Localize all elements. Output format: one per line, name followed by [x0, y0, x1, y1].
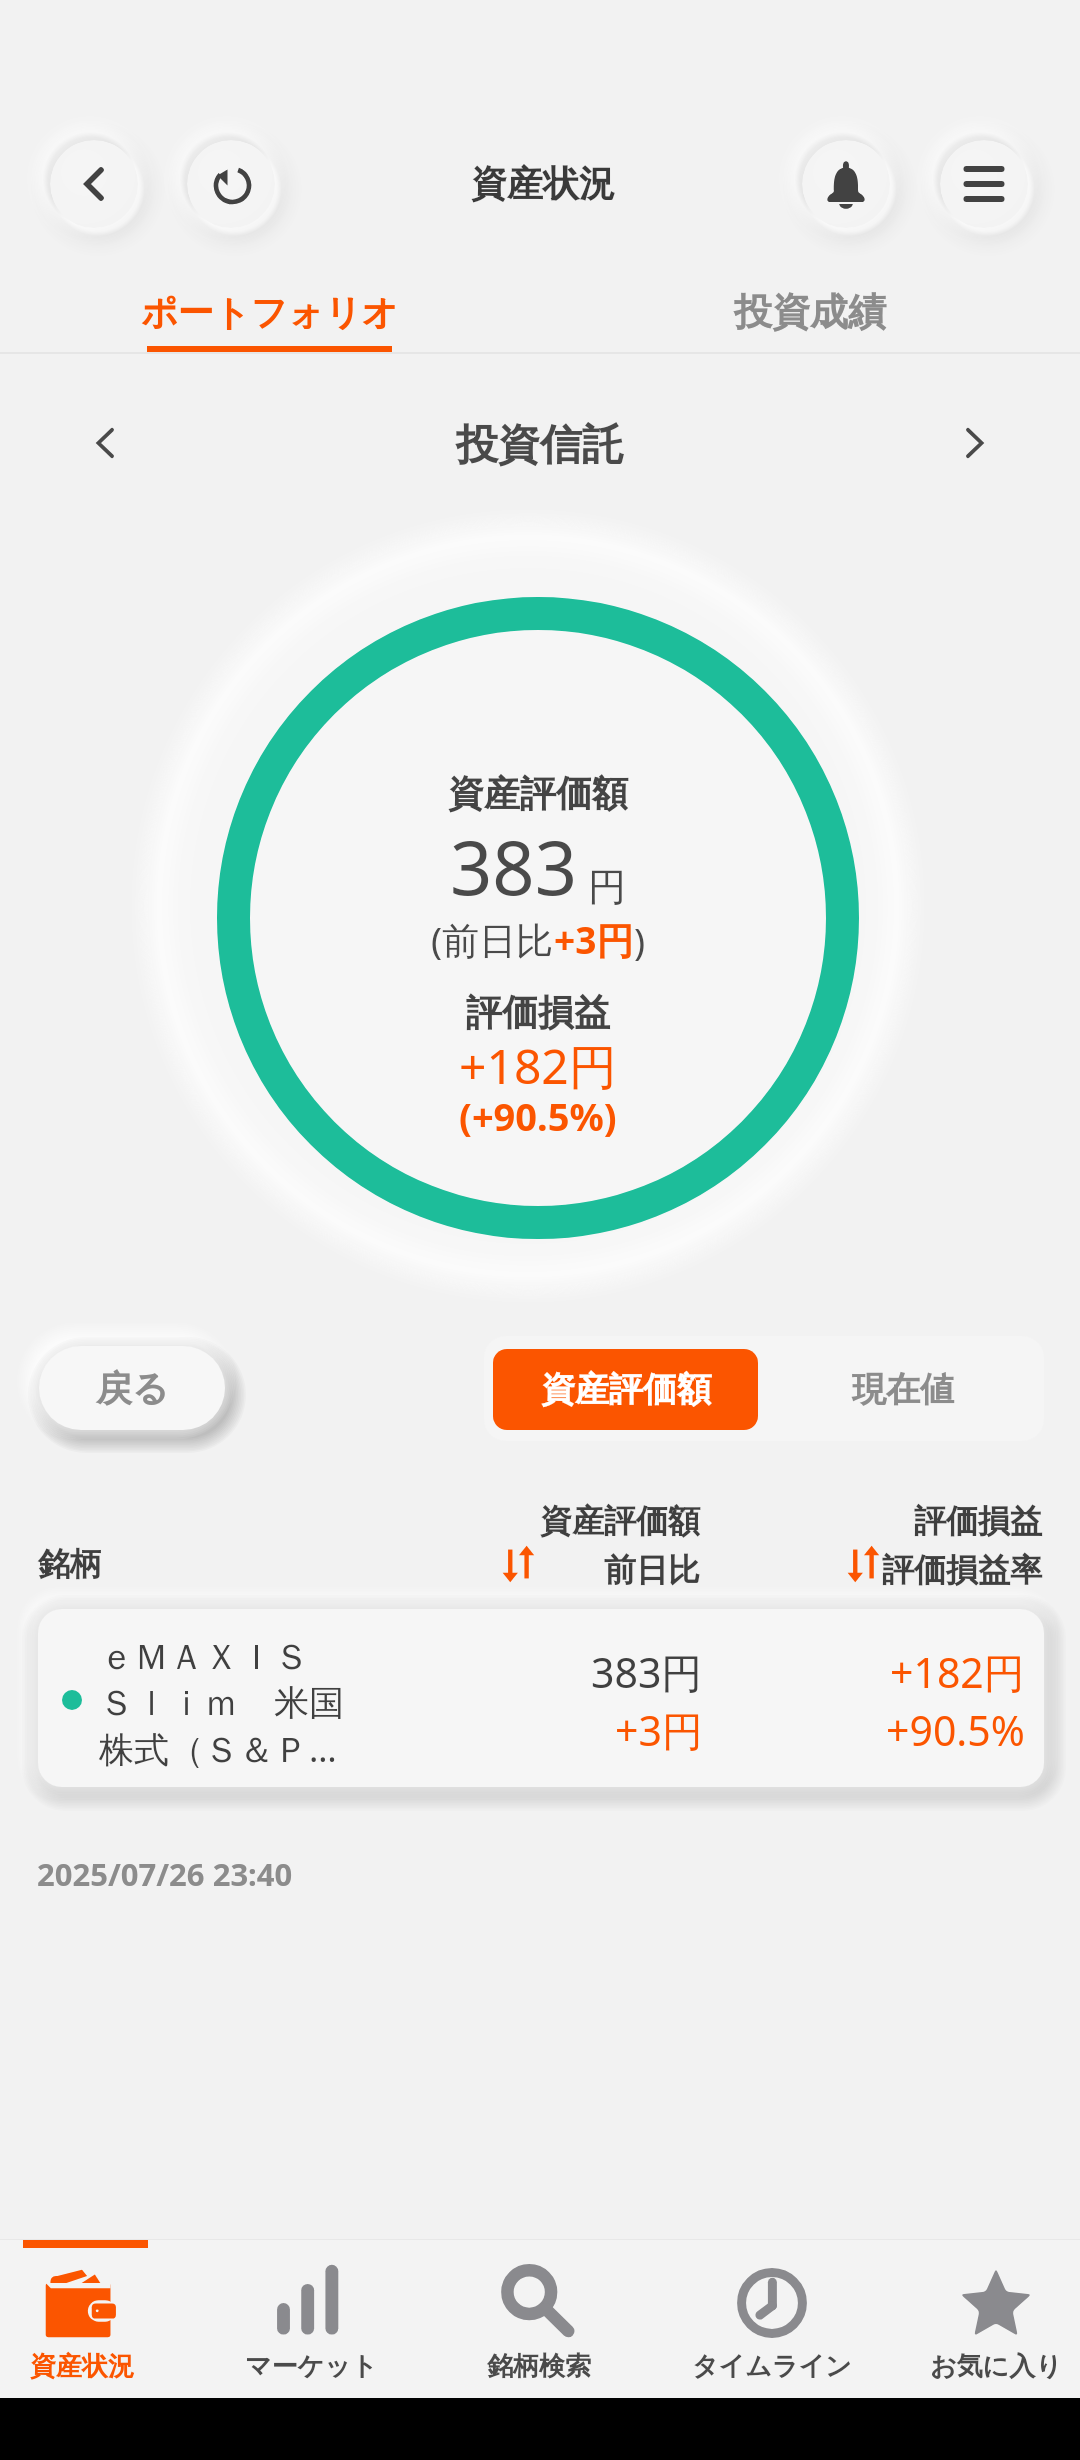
button[interactable]: 現在値 [772, 1349, 1034, 1430]
staticText: 383 [450, 816, 577, 917]
button[interactable]: Previous category [62, 400, 148, 486]
staticText: 投資信託 [456, 419, 624, 472]
button[interactable]: お気に入り [886, 2249, 1080, 2397]
staticText: +3円 [615, 1702, 703, 1758]
button[interactable]: Sort by gain [842, 1541, 886, 1585]
staticText: ) [634, 915, 646, 965]
staticText: +90.5% [886, 1702, 1025, 1758]
button[interactable]: Notifications [802, 140, 890, 228]
staticText: 資産状況 [30, 2350, 134, 2383]
button[interactable]: Back [50, 140, 138, 228]
staticText: ポートフォリオ [141, 290, 399, 335]
staticText: 投資成績 [734, 288, 886, 336]
button[interactable]: Sort by valuation [497, 1541, 541, 1585]
staticText: 資産評価額 [540, 1501, 700, 1541]
staticText: 評価損益率 [882, 1550, 1042, 1590]
staticText: 銘柄検索 [487, 2350, 591, 2383]
button[interactable]: ポートフォリオ [0, 255, 540, 355]
staticText: 383円 [591, 1644, 703, 1700]
staticText: 前日比 [604, 1550, 700, 1590]
staticText: 2025/07/26 23:40 [37, 1853, 293, 1895]
button[interactable]: Next category [932, 400, 1018, 486]
staticText: 円 [588, 863, 626, 911]
staticText: タイムライン [692, 2350, 852, 2383]
staticText: お気に入り [930, 2350, 1062, 2383]
staticText: 資産評価額 [541, 1368, 711, 1411]
staticText: 戻る [96, 1366, 169, 1411]
button[interactable]: 銘柄検索 [429, 2249, 649, 2397]
button[interactable]: 資産評価額 [493, 1349, 758, 1430]
staticText: 現在値 [852, 1368, 954, 1411]
button[interactable]: Refresh [187, 140, 275, 228]
staticText: (前日比 [431, 914, 554, 965]
staticText: 評価損益 [914, 1501, 1042, 1541]
staticText: ｅＭＡＸＩＳ Ｓｌｉｍ 米国 株式（Ｓ＆Ｐ… [99, 1635, 344, 1773]
staticText: +3円 [554, 914, 634, 965]
staticText: +182円 [890, 1644, 1025, 1700]
button[interactable]: ｅＭＡＸＩＳ Ｓｌｉｍ 米国 株式（Ｓ＆Ｐ… [38, 1609, 1044, 1787]
button[interactable]: 資産状況 [0, 2249, 192, 2397]
staticText: 資産状況 [471, 161, 615, 206]
staticText: (+90.5%) [459, 1090, 617, 1142]
button[interactable]: Menu [940, 140, 1028, 228]
staticText: 資産評価額 [448, 771, 628, 816]
staticText: マーケット [245, 2350, 378, 2383]
staticText: 銘柄 [38, 1544, 102, 1584]
staticText: 評価損益 [466, 990, 610, 1035]
button[interactable]: タイムライン [662, 2249, 882, 2397]
button[interactable]: 投資成績 [540, 255, 1080, 355]
button[interactable]: 戻る [39, 1346, 225, 1430]
staticText: +182円 [459, 1033, 617, 1099]
button[interactable]: マーケット [201, 2249, 421, 2397]
